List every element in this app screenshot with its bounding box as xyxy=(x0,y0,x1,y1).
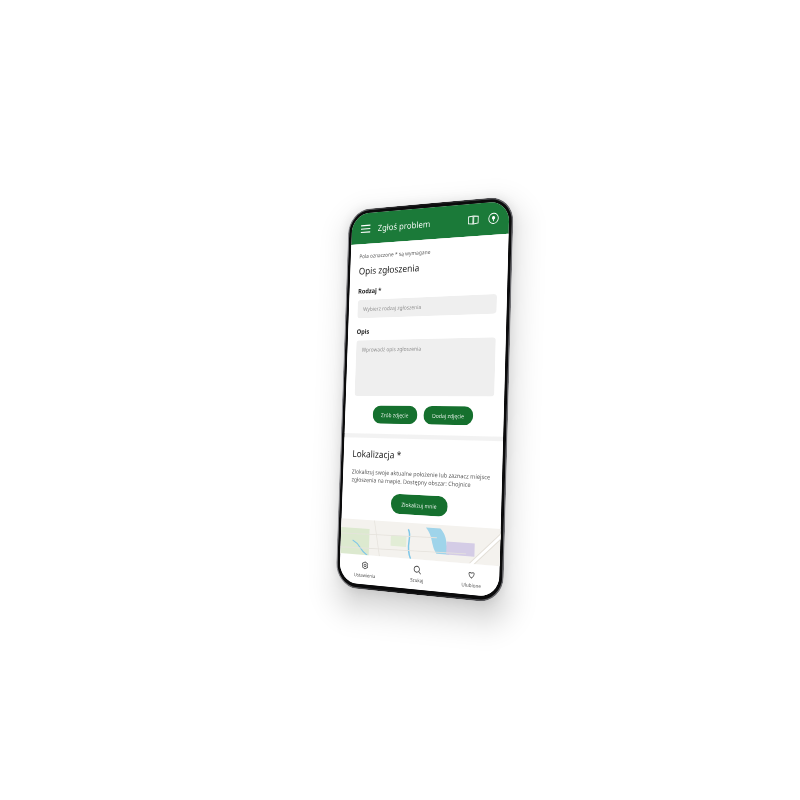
button[interactable]: Mapa xyxy=(465,211,481,229)
button[interactable]: Dodaj zdjęcie xyxy=(423,406,473,425)
staticText: Rodzaj * xyxy=(358,285,382,295)
staticText: Dodaj zdjęcie xyxy=(432,412,464,420)
button[interactable]: Zrób zdjęcie xyxy=(372,405,418,424)
button[interactable]: Zlokalizuj mnie xyxy=(391,494,448,517)
staticText: Zlokalizuj swoje aktualne położenie lub … xyxy=(351,467,492,490)
staticText: Opis xyxy=(357,326,370,335)
staticText: Wybierz rodzaj zgłoszenia xyxy=(363,303,422,313)
button[interactable]: Menu xyxy=(358,220,372,237)
staticText: Szukaj xyxy=(410,576,424,584)
staticText: Zlokalizuj mnie xyxy=(401,501,437,510)
staticText: Wprowadź opis zgłoszenia xyxy=(362,345,422,353)
staticText: Zgłoś problem xyxy=(378,217,431,233)
button[interactable]: Szukaj xyxy=(390,557,444,592)
staticText: Pola oznaczone * są wymagane xyxy=(359,248,431,260)
button[interactable]: Wybierz rodzaj zgłoszenia xyxy=(357,294,497,318)
staticText: Ulubione xyxy=(461,581,481,590)
button[interactable]: Ustawienia xyxy=(339,553,391,587)
button[interactable]: Mapa lokalizacji xyxy=(340,518,501,566)
staticText: Opis zgłoszenia xyxy=(359,261,420,277)
button[interactable]: Lokalizacja xyxy=(486,209,501,227)
staticText: Ustawienia xyxy=(354,571,376,580)
button[interactable]: Ulubione xyxy=(443,562,500,598)
button[interactable]: Wprowadź opis zgłoszenia xyxy=(354,337,496,396)
staticText: Zrób zdjęcie xyxy=(381,411,409,419)
staticText: Lokalizacja * xyxy=(352,447,402,461)
